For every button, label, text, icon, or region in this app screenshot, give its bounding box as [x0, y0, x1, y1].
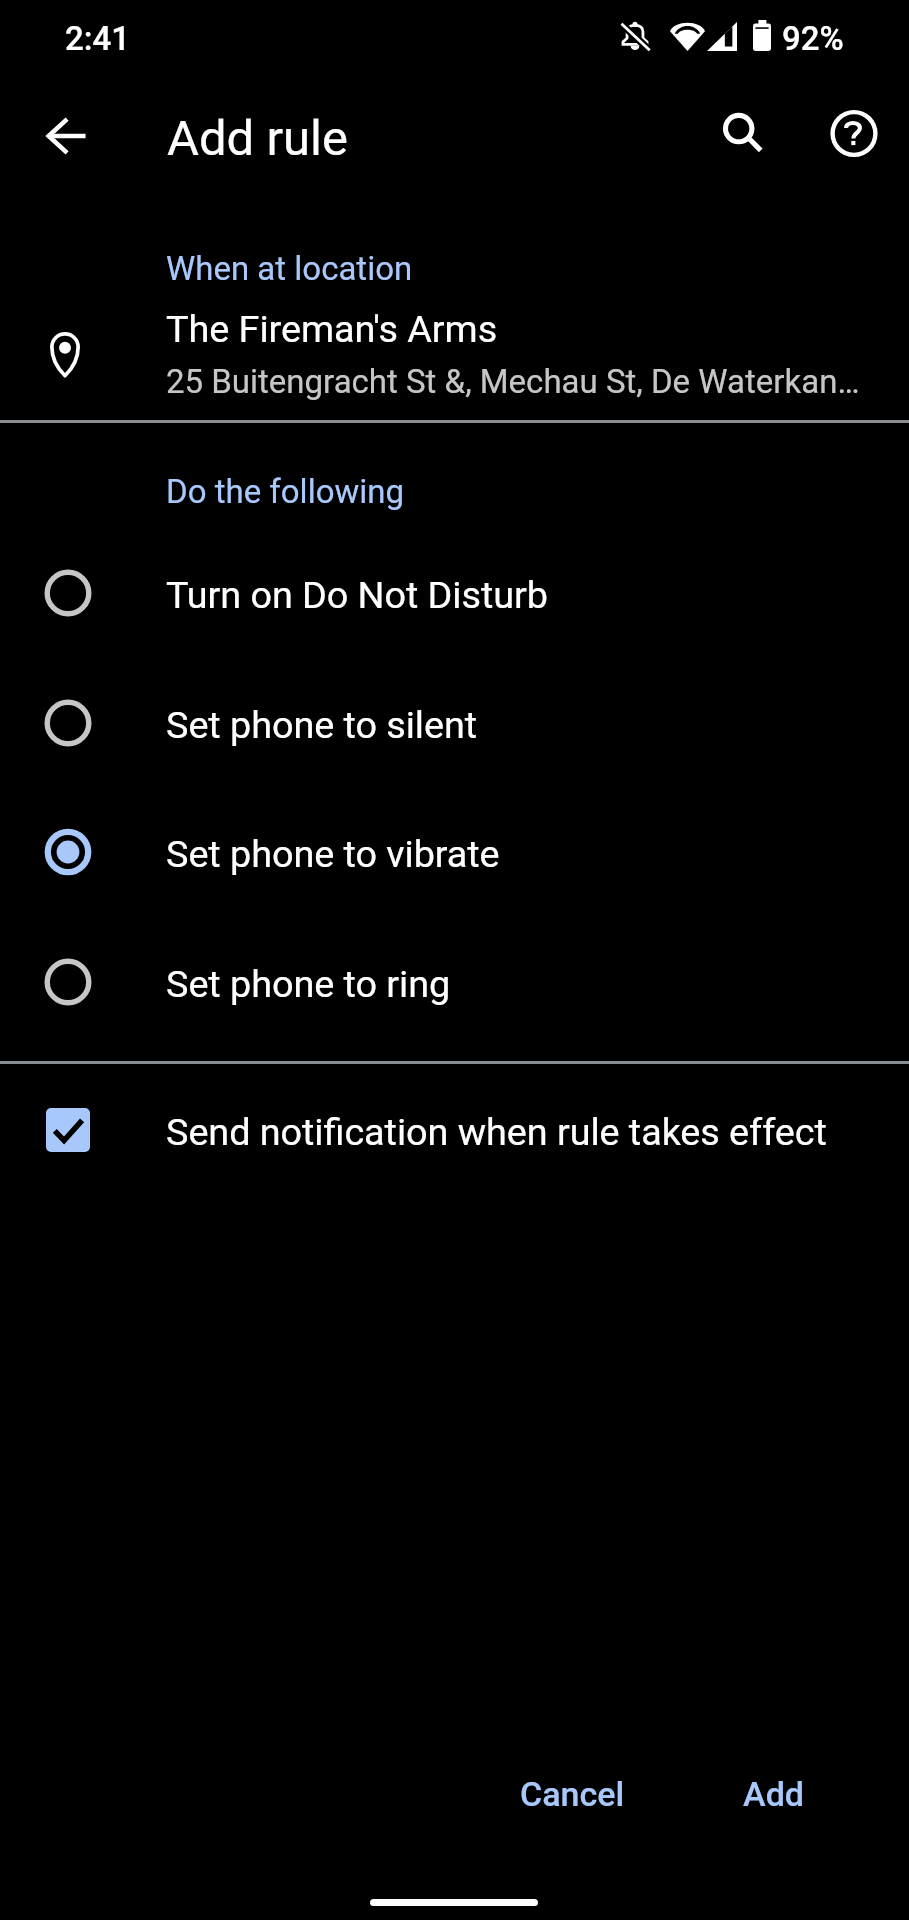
- button[interactable]: Set phone to ring: [0, 917, 909, 1047]
- staticText: Turn on Do Not Disturb: [166, 573, 548, 617]
- staticText: Add: [743, 1774, 805, 1814]
- staticText: 92%: [782, 19, 844, 58]
- button[interactable]: Turn on Do Not Disturb: [0, 528, 909, 658]
- button[interactable]: Search: [698, 89, 786, 177]
- staticText: Set phone to ring: [166, 962, 451, 1006]
- button[interactable]: Send notification when rule takes effect: [0, 1063, 909, 1196]
- button[interactable]: When at location: [0, 230, 909, 420]
- staticText: 2:41: [65, 19, 131, 58]
- staticText: Cancel: [520, 1774, 625, 1814]
- staticText: Send notification when rule takes effect: [166, 1110, 827, 1154]
- button[interactable]: Set phone to vibrate: [0, 787, 909, 917]
- button[interactable]: Navigate up: [22, 92, 110, 180]
- button[interactable]: Add: [721, 1758, 827, 1830]
- staticText: Set phone to vibrate: [166, 832, 500, 876]
- staticText: Set phone to silent: [166, 703, 478, 747]
- staticText: When at location: [166, 249, 413, 288]
- staticText: Add rule: [167, 110, 348, 167]
- button[interactable]: Set phone to silent: [0, 658, 909, 788]
- staticText: Do the following: [166, 472, 405, 511]
- button[interactable]: Cancel: [498, 1758, 647, 1830]
- staticText: The Fireman's Arms: [166, 307, 498, 351]
- staticText: 25 Buitengracht St &, Mechau St, De Wate…: [166, 362, 909, 401]
- button[interactable]: Help: [809, 89, 897, 177]
